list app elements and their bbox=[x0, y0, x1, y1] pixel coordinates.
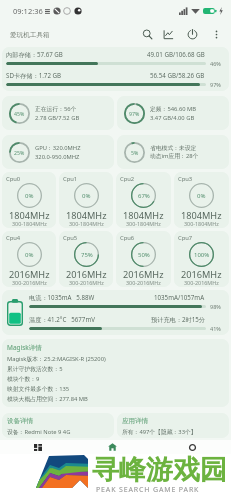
button[interactable]: Cpu1 bbox=[59, 172, 113, 228]
staticText: 25% bbox=[14, 149, 25, 156]
staticText: Magisk版本：25.2:MAGISK-R (25200) bbox=[7, 355, 106, 363]
staticText: 50% bbox=[138, 251, 150, 259]
staticText: 所有：497个【隐藏：33个】 bbox=[122, 428, 197, 436]
staticText: 模块个数：9 bbox=[7, 375, 40, 383]
staticText: 75% bbox=[81, 251, 93, 259]
staticText: Cpu4 bbox=[6, 234, 21, 242]
button[interactable]: 内部存储：57.67 GB bbox=[2, 47, 229, 91]
staticText: 预计充电：2时15分 bbox=[151, 315, 205, 323]
button[interactable]: Home bbox=[105, 440, 120, 454]
staticText: 2016MHz bbox=[181, 268, 222, 281]
staticText: 45% bbox=[14, 110, 25, 117]
staticText: 67% bbox=[138, 192, 150, 200]
button[interactable]: Cpu5 bbox=[59, 231, 113, 287]
staticText: 300-2016MHz bbox=[12, 279, 47, 286]
staticText: 映射文件最多个数：135 bbox=[7, 385, 70, 393]
staticText: 300-2016MHz bbox=[69, 279, 104, 286]
staticText: 300-1804MHz bbox=[12, 220, 47, 227]
staticText: Magisk详情 bbox=[7, 343, 42, 352]
staticText: 应用详情 bbox=[122, 417, 148, 425]
staticText: 0% bbox=[82, 192, 91, 200]
staticText: 300-1804MHz bbox=[69, 220, 104, 227]
staticText: 省电模式：未设定 bbox=[150, 144, 197, 151]
staticText: 定频：546.60 MB bbox=[150, 105, 197, 113]
staticText: 100% bbox=[194, 251, 210, 259]
staticText: 0% bbox=[197, 192, 206, 200]
staticText: PEAK SEARCH GAME PARK bbox=[96, 485, 200, 495]
button[interactable]: 应用详情 bbox=[117, 413, 229, 438]
staticText: 2.78 GB/7.52 GB bbox=[35, 114, 80, 122]
button[interactable]: 5% bbox=[117, 135, 229, 169]
staticText: Cpu2 bbox=[120, 175, 135, 183]
staticText: 电流：1035mA 5.88W bbox=[29, 293, 95, 301]
staticText: Cpu7 bbox=[178, 234, 193, 242]
staticText: 正在运行：56个 bbox=[35, 105, 77, 113]
button[interactable]: Cpu2 bbox=[116, 172, 171, 228]
staticText: 97% bbox=[210, 81, 221, 88]
staticText: 41% bbox=[210, 325, 221, 332]
button[interactable]: Cpu4 bbox=[2, 231, 56, 287]
button[interactable]: 设备详情 bbox=[2, 413, 114, 438]
staticText: 寻峰游戏园 bbox=[92, 453, 227, 487]
staticText: 爱玩机工具箱 bbox=[10, 31, 50, 39]
staticText: 1804MHz bbox=[9, 209, 50, 222]
staticText: 内部存储：57.67 GB bbox=[6, 50, 63, 58]
button[interactable]: Power bbox=[185, 27, 200, 42]
staticText: 0% bbox=[25, 192, 34, 200]
staticText: 1804MHz bbox=[181, 209, 222, 222]
staticText: Cpu5 bbox=[63, 234, 78, 242]
staticText: 98% bbox=[210, 303, 221, 310]
staticText: SD卡存储：1.72 GB bbox=[6, 71, 62, 79]
button[interactable]: Cpu3 bbox=[174, 172, 229, 228]
staticText: 设备详情 bbox=[7, 417, 33, 425]
staticText: Cpu3 bbox=[178, 175, 193, 183]
staticText: 2016MHz bbox=[66, 268, 107, 281]
staticText: 1804MHz bbox=[123, 209, 164, 222]
button[interactable]: Back bbox=[185, 440, 200, 454]
staticText: 0% bbox=[25, 251, 34, 259]
staticText: 1035mA/1057mA bbox=[154, 293, 205, 301]
staticText: Cpu0 bbox=[6, 175, 21, 183]
staticText: GPU：320.0MHZ bbox=[35, 144, 81, 152]
staticText: 56.54 GB/58.26 GB bbox=[150, 71, 205, 79]
button[interactable]: Statistics bbox=[161, 27, 176, 42]
staticText: 设备：Redmi Note 9 4G bbox=[7, 428, 71, 436]
staticText: 09:12:36 bbox=[13, 6, 43, 16]
button[interactable]: 25% bbox=[2, 135, 114, 169]
button[interactable]: 电流：1035mA 5.88W bbox=[2, 290, 229, 335]
staticText: 300-1804MHz bbox=[126, 220, 161, 227]
staticText: 46% bbox=[210, 60, 221, 67]
button[interactable]: Cpu6 bbox=[116, 231, 171, 287]
staticText: 温度：41.2°C 5677mV bbox=[29, 315, 95, 323]
button[interactable]: 45% bbox=[2, 96, 114, 130]
staticText: 97% bbox=[129, 110, 140, 117]
staticText: Cpu1 bbox=[63, 175, 78, 183]
button[interactable]: Cpu7 bbox=[174, 231, 229, 287]
button[interactable]: More options bbox=[209, 27, 224, 42]
staticText: 49.01 GB/106.68 GB bbox=[147, 50, 205, 58]
button[interactable]: 97% bbox=[117, 96, 229, 130]
button[interactable]: Search bbox=[140, 27, 155, 42]
staticText: 5% bbox=[131, 149, 139, 156]
staticText: 3.47 GB/4.00 GB bbox=[150, 114, 195, 122]
staticText: 320.0-950.0MHZ bbox=[35, 153, 80, 161]
staticText: Cpu6 bbox=[120, 234, 135, 242]
staticText: 累计守护救活次数：5 bbox=[7, 365, 63, 373]
staticText: 动态im应用：28个 bbox=[150, 152, 199, 160]
button[interactable]: Cpu0 bbox=[2, 172, 56, 228]
staticText: 1804MHz bbox=[66, 209, 107, 222]
staticText: 300-2016MHz bbox=[126, 279, 161, 286]
staticText: 300-1804MHz bbox=[184, 220, 219, 227]
staticText: 2016MHz bbox=[123, 268, 164, 281]
button[interactable]: Recent apps bbox=[30, 440, 45, 454]
staticText: 2016MHz bbox=[9, 268, 50, 281]
button[interactable]: Magisk详情 bbox=[2, 339, 229, 407]
staticText: 300-2016MHz bbox=[184, 279, 219, 286]
staticText: 模块大概占用空间：277.84 MB bbox=[7, 395, 88, 403]
